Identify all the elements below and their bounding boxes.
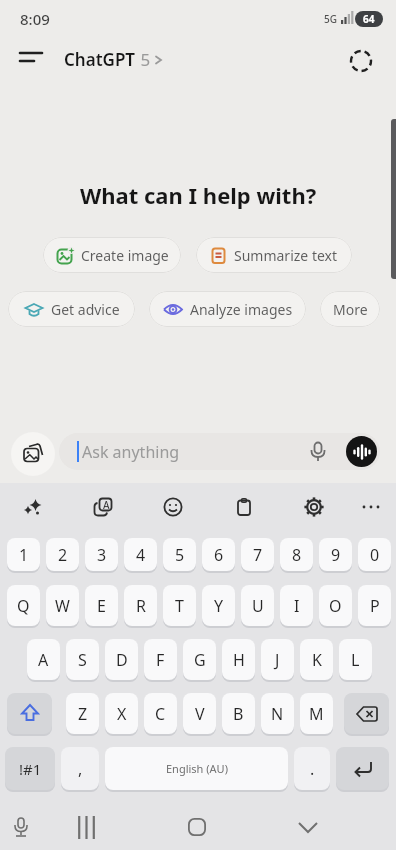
- staticText: A: [103, 498, 110, 512]
- staticText: 5: [136, 48, 151, 71]
- staticText: English (AU): [166, 761, 228, 776]
- button[interactable]: W: [46, 585, 79, 626]
- staticText: R: [136, 595, 146, 617]
- button[interactable]: 1: [7, 538, 40, 571]
- staticText: P: [370, 595, 380, 617]
- button[interactable]: [13, 493, 53, 521]
- button[interactable]: ,: [61, 747, 99, 790]
- staticText: U: [252, 595, 264, 617]
- button[interactable]: D: [105, 639, 138, 680]
- button[interactable]: G: [183, 639, 216, 680]
- button[interactable]: C: [144, 693, 177, 734]
- staticText: 6: [214, 544, 224, 566]
- button[interactable]: [343, 43, 379, 79]
- button[interactable]: I: [280, 585, 313, 626]
- button[interactable]: Q: [7, 585, 40, 626]
- button[interactable]: B: [222, 693, 255, 734]
- staticText: 9: [331, 544, 341, 566]
- staticText: I: [294, 595, 300, 617]
- button[interactable]: 9: [319, 538, 352, 571]
- staticText: Ask anything: [82, 441, 180, 463]
- staticText: X: [117, 703, 127, 725]
- button[interactable]: N: [261, 693, 294, 734]
- button[interactable]: M: [300, 693, 333, 734]
- staticText: D: [116, 649, 128, 671]
- button[interactable]: V: [183, 693, 216, 734]
- button[interactable]: 0: [358, 538, 391, 571]
- button[interactable]: K: [300, 639, 333, 680]
- button[interactable]: U: [241, 585, 274, 626]
- button[interactable]: R: [124, 585, 157, 626]
- staticText: !#1: [19, 759, 42, 779]
- button[interactable]: X: [105, 693, 138, 734]
- staticText: J: [275, 649, 280, 671]
- button[interactable]: Create image: [43, 237, 181, 273]
- button[interactable]: 2: [46, 538, 79, 571]
- button[interactable]: A: [27, 639, 60, 680]
- button[interactable]: F: [144, 639, 177, 680]
- button[interactable]: J: [261, 639, 294, 680]
- button[interactable]: [8, 45, 52, 77]
- button[interactable]: [292, 811, 324, 843]
- button[interactable]: [224, 493, 264, 521]
- staticText: 8:09: [20, 9, 50, 29]
- button[interactable]: [6, 812, 36, 842]
- button[interactable]: 4: [124, 538, 157, 571]
- button[interactable]: [70, 811, 102, 843]
- staticText: Summarize text: [234, 246, 338, 265]
- button[interactable]: 7: [241, 538, 274, 571]
- button[interactable]: [294, 493, 334, 521]
- button[interactable]: O: [319, 585, 352, 626]
- button[interactable]: L: [339, 639, 372, 680]
- staticText: 4: [136, 544, 146, 566]
- button[interactable]: [346, 436, 377, 467]
- button[interactable]: Z: [66, 693, 99, 734]
- button[interactable]: ChatGPT: [64, 48, 163, 71]
- staticText: 8: [292, 544, 302, 566]
- staticText: W: [55, 595, 70, 617]
- staticText: A: [38, 649, 49, 671]
- staticText: K: [312, 649, 322, 671]
- button[interactable]: Ask anything: [59, 433, 380, 470]
- staticText: M: [309, 703, 324, 725]
- button[interactable]: !#1: [5, 747, 55, 790]
- button[interactable]: P: [358, 585, 391, 626]
- button[interactable]: 3: [85, 538, 118, 571]
- staticText: G: [194, 649, 206, 671]
- button[interactable]: T: [163, 585, 196, 626]
- button[interactable]: [344, 693, 389, 734]
- button[interactable]: More: [320, 291, 380, 327]
- staticText: .: [310, 758, 315, 780]
- button[interactable]: H: [222, 639, 255, 680]
- button[interactable]: [11, 432, 55, 476]
- button[interactable]: 8: [280, 538, 313, 571]
- staticText: V: [195, 703, 205, 725]
- staticText: T: [175, 595, 184, 617]
- staticText: F: [156, 649, 165, 671]
- button[interactable]: 5: [163, 538, 196, 571]
- staticText: 64: [363, 12, 375, 26]
- button[interactable]: 6: [202, 538, 235, 571]
- button[interactable]: Analyze images: [149, 291, 306, 327]
- staticText: B: [233, 703, 244, 725]
- button[interactable]: S: [66, 639, 99, 680]
- button[interactable]: [153, 493, 193, 521]
- staticText: Z: [78, 703, 88, 725]
- button[interactable]: [351, 493, 391, 521]
- staticText: S: [78, 649, 87, 671]
- button[interactable]: Summarize text: [196, 237, 352, 273]
- staticText: Analyze images: [190, 300, 293, 319]
- button[interactable]: E: [85, 585, 118, 626]
- staticText: 0: [370, 544, 380, 566]
- button[interactable]: [7, 693, 52, 734]
- button[interactable]: English (AU): [105, 747, 288, 790]
- staticText: H: [233, 649, 245, 671]
- button[interactable]: A: [83, 493, 123, 521]
- button[interactable]: [336, 747, 389, 790]
- button[interactable]: Y: [202, 585, 235, 626]
- button[interactable]: [181, 811, 213, 843]
- staticText: 2: [58, 544, 68, 566]
- button[interactable]: Get advice: [8, 291, 135, 327]
- staticText: L: [351, 649, 360, 671]
- button[interactable]: .: [294, 747, 330, 790]
